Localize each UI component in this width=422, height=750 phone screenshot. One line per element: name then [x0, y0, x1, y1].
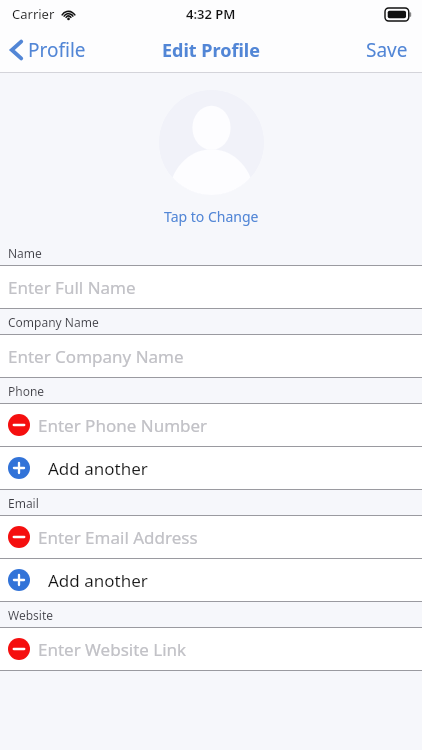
button[interactable]: Remove field	[0, 516, 422, 558]
other: Change profile photo	[159, 90, 264, 195]
staticText: Add another	[48, 569, 148, 592]
button[interactable]: Remove field	[0, 404, 422, 446]
staticText: Add another	[48, 457, 148, 480]
button[interactable]: Enter Full Name	[0, 266, 422, 308]
button[interactable]: Remove field	[8, 638, 30, 660]
button[interactable]: Add another	[0, 447, 422, 489]
staticText: Tap to Change	[164, 207, 259, 226]
staticText: Save	[366, 37, 408, 63]
staticText: Enter Phone Number	[38, 414, 208, 437]
staticText: 4:32 PM	[186, 5, 236, 23]
staticText: Email	[8, 495, 39, 511]
staticText: Carrier	[12, 5, 55, 23]
staticText: Name	[8, 245, 42, 261]
staticText: Profile	[28, 37, 86, 63]
staticText: Website	[8, 607, 54, 623]
staticText: Enter Website Link	[38, 638, 187, 661]
button[interactable]: Change profile photo	[0, 73, 422, 240]
button[interactable]: Profile	[0, 32, 98, 68]
button[interactable]: Remove field	[8, 526, 30, 548]
staticText: Company Name	[8, 314, 99, 330]
staticText: Enter Email Address	[38, 526, 198, 549]
staticText: Phone	[8, 383, 45, 399]
button[interactable]: Save	[352, 30, 422, 70]
button[interactable]: Remove field	[0, 628, 422, 670]
staticText: Enter Full Name	[8, 276, 136, 299]
button[interactable]: Add another	[0, 559, 422, 601]
staticText: Edit Profile	[162, 38, 260, 63]
staticText: Enter Company Name	[8, 345, 184, 368]
button[interactable]: Remove field	[8, 414, 30, 436]
button[interactable]: Enter Company Name	[0, 335, 422, 377]
